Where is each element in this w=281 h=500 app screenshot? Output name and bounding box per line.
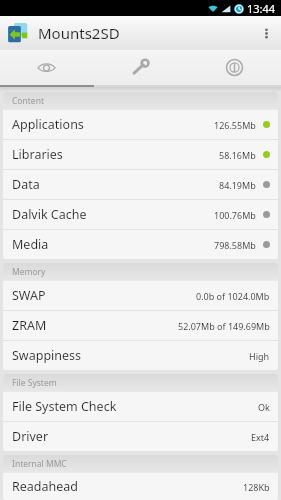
staticText: Media xyxy=(12,236,49,253)
button[interactable]: Settings xyxy=(93,50,187,85)
button[interactable]: More options xyxy=(251,16,281,50)
staticText: 0.0b of 1024.0Mb xyxy=(196,290,270,302)
button[interactable]: ZRAM xyxy=(3,311,278,340)
button[interactable]: Dalvik Cache xyxy=(3,200,278,229)
staticText: Mounts2SD xyxy=(38,23,120,43)
staticText: Content xyxy=(12,95,44,107)
button[interactable]: Media xyxy=(3,230,278,259)
staticText: Libraries xyxy=(12,146,63,163)
staticText: 52.07Mb of 149.69Mb xyxy=(178,320,270,332)
staticText: Internal MMC xyxy=(12,458,67,470)
staticText: SWAP xyxy=(12,287,46,304)
staticText: 100.76Mb xyxy=(214,209,256,221)
button[interactable]: SWAP xyxy=(3,281,278,310)
staticText: ZRAM xyxy=(12,317,47,334)
staticText: 126.55Mb xyxy=(214,119,256,131)
staticText: Readahead xyxy=(12,478,79,495)
button[interactable]: Data xyxy=(3,170,278,199)
staticText: File System Check xyxy=(12,398,117,415)
button[interactable]: Status xyxy=(0,50,93,85)
staticText: High xyxy=(249,350,270,362)
staticText: Swappiness xyxy=(12,347,82,364)
staticText: Dalvik Cache xyxy=(12,206,87,223)
staticText: 58.16Mb xyxy=(219,149,256,161)
staticText: Memory xyxy=(12,266,46,278)
staticText: 128Kb xyxy=(243,481,270,493)
button[interactable]: Applications xyxy=(3,110,278,139)
staticText: 13:44 xyxy=(247,1,276,16)
staticText: Data xyxy=(12,176,40,193)
staticText: Ok xyxy=(258,401,270,413)
button[interactable]: Readahead xyxy=(3,473,278,500)
button[interactable]: Swappiness xyxy=(3,341,278,370)
staticText: Ext4 xyxy=(251,431,270,443)
button[interactable]: Driver xyxy=(3,422,278,451)
button[interactable]: Libraries xyxy=(3,140,278,169)
staticText: Driver xyxy=(12,428,49,445)
button[interactable]: About xyxy=(187,50,281,85)
staticText: File System xyxy=(12,377,57,389)
staticText: 84.19Mb xyxy=(219,179,256,191)
staticText: 798.58Mb xyxy=(214,239,256,251)
button[interactable]: File System Check xyxy=(3,392,278,421)
staticText: Applications xyxy=(12,116,84,133)
